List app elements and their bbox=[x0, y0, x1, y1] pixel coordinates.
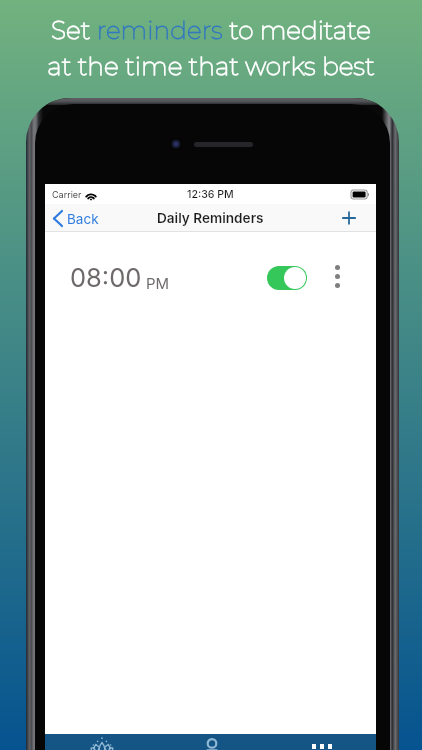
staticText: Back bbox=[67, 211, 99, 227]
staticText: PM bbox=[146, 274, 170, 292]
staticText: Daily Reminders bbox=[157, 210, 264, 226]
button[interactable]: More bbox=[266, 734, 376, 750]
button[interactable]: Profile bbox=[156, 734, 266, 750]
staticText: 08:00 bbox=[70, 262, 142, 293]
button[interactable]: Toggle reminder bbox=[267, 266, 307, 290]
staticText: Carrier bbox=[52, 189, 82, 200]
staticText: Set reminders to meditate bbox=[51, 15, 371, 45]
staticText: 12:36 PM bbox=[187, 188, 234, 201]
button[interactable]: 08:00 bbox=[45, 232, 376, 298]
staticText: at the time that works best bbox=[47, 51, 375, 81]
button[interactable]: Add reminder bbox=[341, 210, 376, 226]
button[interactable]: More options bbox=[329, 259, 346, 294]
button[interactable]: Meditate bbox=[45, 734, 156, 750]
button[interactable]: Back bbox=[45, 206, 107, 231]
